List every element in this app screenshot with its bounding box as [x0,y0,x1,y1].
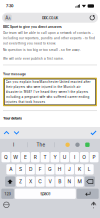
staticText: O [82,154,86,160]
staticText: Z [19,179,22,184]
button[interactable]: 123 [1,189,14,199]
button[interactable]: X [26,176,35,187]
button[interactable]: M [75,176,84,187]
staticText: A [5,15,8,20]
staticText: B [58,179,61,184]
staticText: 123 [5,191,11,196]
staticText: U [63,154,67,160]
button[interactable]: Dictation [88,201,99,209]
staticText: 7:30 [6,4,13,8]
staticText: No question is too big or too small - so… [3,48,81,52]
staticText: F [39,166,42,172]
staticText: Y [53,154,56,160]
button[interactable]: I [70,152,79,162]
button[interactable]: Next field [11,127,21,138]
button[interactable]: Reload page [88,14,96,21]
staticText: C [38,179,42,184]
button[interactable]: C [36,176,45,187]
staticText: J [68,166,71,172]
staticText: P [93,154,96,160]
staticText: E [24,154,27,160]
button[interactable]: The [27,139,54,151]
button[interactable]: Shift [5,176,15,187]
button[interactable]: E [21,152,30,162]
staticText: G [48,166,52,172]
staticText: S [19,166,22,172]
button[interactable]: D [26,164,35,174]
staticText: V [48,179,51,184]
staticText: bbc.co.uk [42,15,58,20]
button[interactable]: W [11,152,20,162]
button[interactable]: P [90,152,98,162]
staticText: N [68,179,72,184]
staticText: Q [4,154,8,160]
button[interactable]: Delete [85,176,95,187]
staticText: I [74,154,75,160]
button[interactable]: A [6,164,15,174]
staticText: Your message [3,72,26,76]
staticText: W [13,154,18,160]
staticText: A [8,17,10,20]
button[interactable]: B [55,176,64,187]
button[interactable]: N [65,176,74,187]
staticText: R [34,154,37,160]
staticText: H [58,166,62,172]
button[interactable]: Z [16,176,25,187]
staticText: We will only ever publish a first name. [3,57,64,60]
button[interactable]: T [41,152,49,162]
button[interactable]: K [75,164,84,174]
button[interactable]: Return [77,189,99,199]
button[interactable]: Emoji keyboard [1,201,12,209]
button[interactable]: V [45,176,54,187]
button[interactable]: F [36,164,45,174]
button[interactable]: space [15,189,76,199]
button[interactable]: L [85,164,94,174]
staticText: Can you explain how Manchester United re… [6,80,91,104]
button[interactable]: U [60,152,69,162]
button[interactable]: Page settings [4,14,12,21]
staticText: M [77,179,81,184]
staticText: BBC Sport to give you direct answers [3,25,62,29]
button[interactable]: Q [1,152,10,162]
button[interactable]: S [16,164,25,174]
button[interactable]: O [80,152,89,162]
staticText: Your details [3,116,22,120]
staticText: X [29,179,32,184]
button[interactable]: J [65,164,74,174]
staticText: I [13,142,14,147]
button[interactable]: R [31,152,40,162]
staticText: T [44,154,47,160]
staticText: space [40,191,50,196]
staticText: Our team will be able to call upon a net… [3,31,95,45]
button[interactable]: Done [88,127,98,138]
button[interactable]: I [0,139,27,151]
staticText: A [9,166,12,172]
staticText: K [78,166,81,172]
button[interactable]: G [45,164,54,174]
staticText: L [88,166,91,172]
button[interactable]: Y [50,152,59,162]
button[interactable]: Previous field [1,127,11,138]
staticText: D [29,166,32,172]
staticText: The [36,142,45,147]
button[interactable]: H [55,164,64,174]
